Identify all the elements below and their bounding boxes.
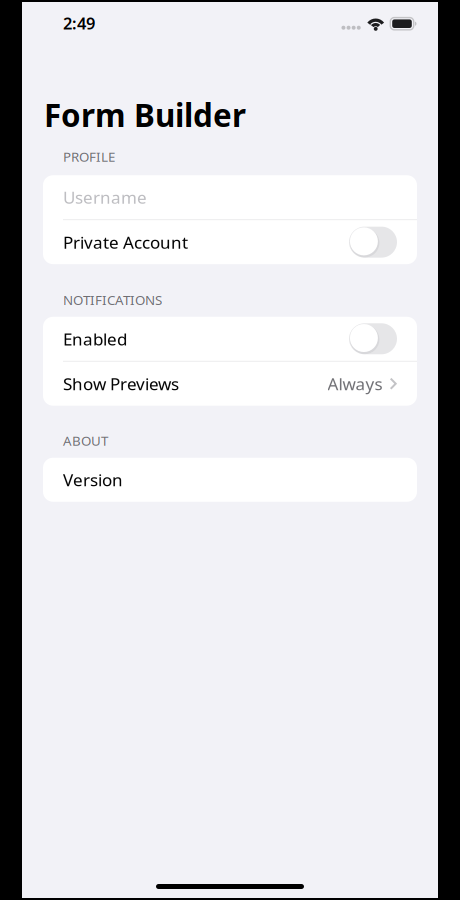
staticText: Private Account [63,231,188,254]
staticText: Enabled [63,327,127,350]
button[interactable]: Username [43,175,417,219]
staticText: Username [63,186,147,209]
button[interactable]: Show Previews [43,362,417,406]
staticText: Show Previews [63,372,179,395]
staticText: ABOUT [63,431,108,450]
staticText: 2:49 [63,12,95,34]
staticText: Always [327,372,382,395]
staticText: Form Builder [44,93,246,136]
button[interactable]: Version [43,458,417,502]
button[interactable]: Enabled [43,317,417,361]
staticText: NOTIFICATIONS [63,291,162,309]
staticText: Version [63,468,123,491]
staticText: PROFILE [63,147,115,166]
button[interactable]: Private Account [43,220,417,264]
